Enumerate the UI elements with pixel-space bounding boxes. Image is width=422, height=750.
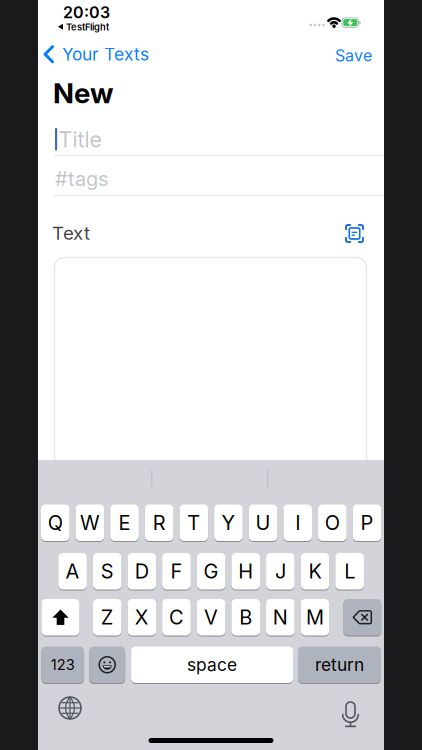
button[interactable]: W — [76, 504, 104, 541]
staticText: U — [256, 511, 271, 535]
button[interactable]: H — [231, 553, 260, 589]
staticText: A — [66, 559, 80, 583]
button[interactable]: A — [58, 553, 87, 589]
staticText: E — [119, 511, 131, 535]
button[interactable]: T — [179, 504, 208, 541]
staticText: M — [306, 605, 324, 629]
button[interactable]: Title — [54, 125, 350, 159]
button[interactable]: #tags — [54, 167, 350, 197]
staticText: S — [101, 559, 114, 583]
staticText: #tags — [55, 167, 108, 191]
button[interactable]: N — [266, 599, 295, 635]
button[interactable]: R — [145, 504, 173, 541]
button[interactable]: Q — [41, 504, 70, 541]
staticText: 123 — [51, 656, 75, 673]
staticText: J — [275, 559, 286, 583]
staticText: New — [53, 76, 113, 109]
staticText: return — [315, 654, 364, 675]
button[interactable]: V — [197, 599, 225, 635]
staticText: I — [295, 511, 300, 535]
button[interactable]: F — [162, 553, 191, 589]
button[interactable]: X — [127, 599, 156, 635]
staticText: B — [239, 605, 252, 629]
staticText: W — [80, 511, 100, 535]
button[interactable]: P — [353, 504, 381, 541]
button[interactable]: O — [318, 504, 347, 541]
staticText: D — [135, 559, 149, 583]
button[interactable]: 123 — [41, 646, 84, 683]
button[interactable]: L — [335, 553, 364, 589]
button[interactable]: B — [231, 599, 260, 635]
button[interactable]: Your Texts — [43, 44, 149, 64]
staticText: F — [170, 559, 182, 583]
button[interactable] — [343, 599, 381, 635]
staticText: X — [135, 605, 149, 629]
staticText: space — [187, 654, 237, 675]
button[interactable]: J — [266, 553, 295, 589]
staticText: P — [360, 511, 373, 535]
staticText: G — [204, 559, 219, 583]
staticText: Your Texts — [62, 44, 149, 64]
staticText: Text — [52, 222, 90, 244]
staticText: Q — [48, 511, 63, 535]
button[interactable] — [345, 224, 364, 243]
button[interactable]: K — [301, 553, 329, 589]
button[interactable]: C — [162, 599, 191, 635]
button[interactable]: E — [110, 504, 139, 541]
button[interactable]: return — [298, 646, 381, 683]
button[interactable]: Save — [335, 46, 372, 65]
staticText: Title — [58, 127, 101, 152]
button[interactable] — [59, 697, 81, 719]
staticText: 20:03 — [63, 3, 110, 22]
button[interactable]: D — [128, 553, 156, 589]
staticText: Y — [221, 511, 235, 535]
button[interactable]: I — [283, 504, 312, 541]
staticText: H — [238, 559, 253, 583]
staticText: Save — [335, 46, 372, 65]
staticText: K — [308, 559, 321, 583]
staticText: N — [273, 605, 288, 629]
button[interactable]: S — [93, 553, 121, 589]
staticText: T — [187, 511, 200, 535]
button[interactable] — [89, 646, 125, 683]
staticText: R — [153, 511, 166, 535]
button[interactable]: Y — [214, 504, 243, 541]
staticText: L — [344, 559, 355, 583]
button[interactable]: G — [197, 553, 225, 589]
button[interactable]: Z — [93, 599, 121, 635]
staticText: C — [169, 605, 184, 629]
staticText: V — [204, 605, 218, 629]
button[interactable]: U — [249, 504, 277, 541]
button[interactable]: M — [301, 599, 329, 635]
button[interactable] — [54, 257, 366, 472]
staticText: Z — [101, 605, 114, 629]
button[interactable] — [41, 599, 79, 635]
staticText: O — [325, 511, 340, 535]
button[interactable] — [339, 702, 361, 727]
staticText: TestFlight — [66, 21, 109, 32]
button[interactable]: space — [131, 646, 293, 683]
